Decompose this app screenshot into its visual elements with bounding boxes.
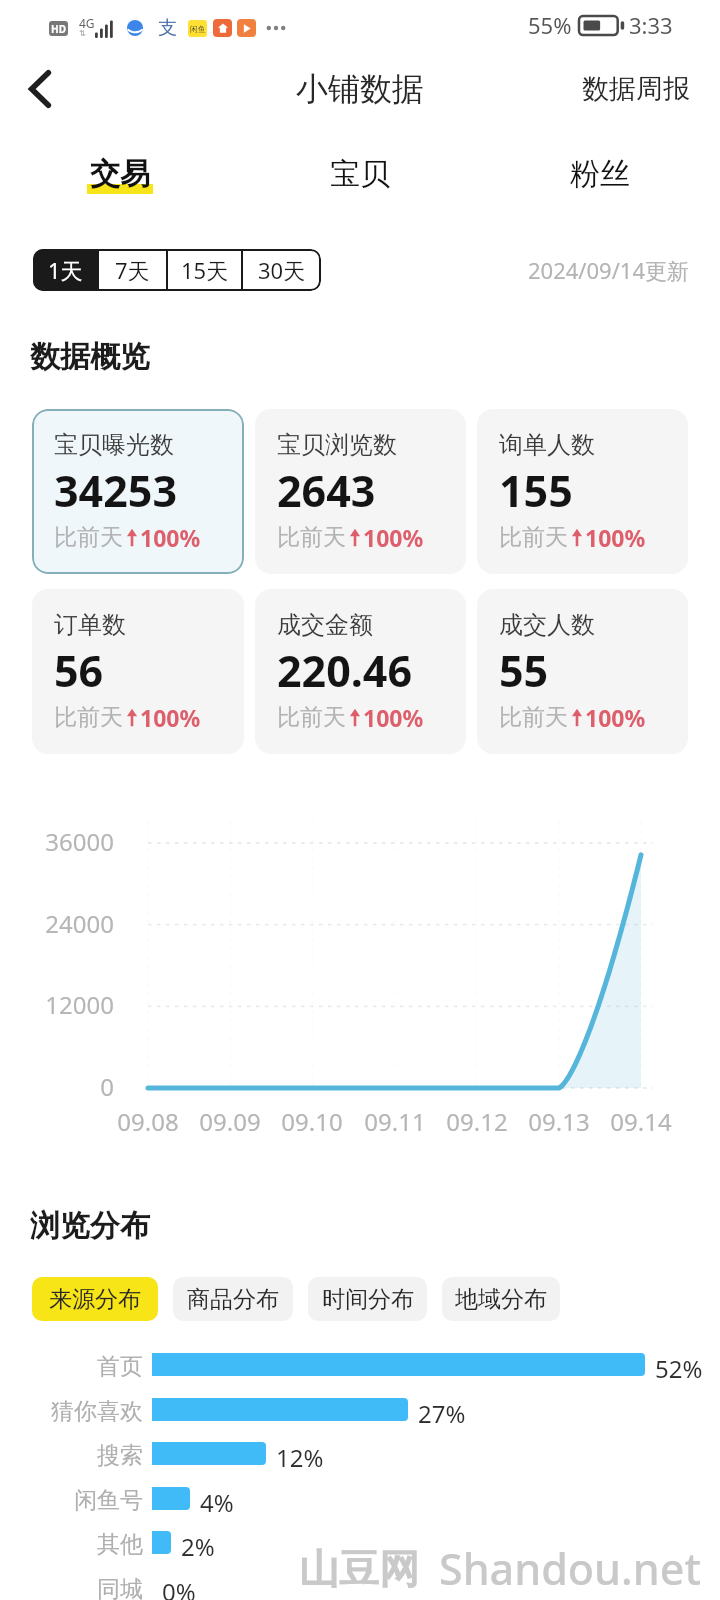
staticText: 询单人数 bbox=[499, 430, 595, 460]
staticText: 09.12 bbox=[427, 1105, 527, 1138]
staticText: 09.11 bbox=[345, 1105, 445, 1138]
button[interactable]: 1天 bbox=[33, 249, 97, 291]
staticText: 12% bbox=[276, 1441, 324, 1474]
staticText: 55 bbox=[499, 641, 549, 700]
staticText: 闲鱼 bbox=[190, 24, 206, 34]
staticText: 09.13 bbox=[509, 1105, 609, 1138]
staticText: 2% bbox=[181, 1530, 215, 1563]
button[interactable]: 订单数 bbox=[32, 589, 244, 754]
staticText: 宝贝浏览数 bbox=[277, 430, 397, 460]
button[interactable]: 其他 bbox=[0, 1522, 720, 1563]
staticText: 2643 bbox=[277, 461, 376, 520]
staticText: 2024/09/14更新 bbox=[528, 255, 690, 285]
staticText: 220.46 bbox=[277, 641, 413, 700]
button[interactable]: 搜索 bbox=[0, 1433, 720, 1474]
staticText: 成交人数 bbox=[499, 610, 595, 640]
staticText: 09.10 bbox=[262, 1105, 362, 1138]
button[interactable]: 询单人数 bbox=[477, 409, 688, 574]
staticText: 订单数 bbox=[54, 610, 126, 640]
staticText: 34253 bbox=[54, 461, 177, 520]
staticText: 52% bbox=[655, 1352, 703, 1385]
button[interactable]: 宝贝 bbox=[240, 135, 480, 213]
staticText: 支 bbox=[158, 16, 177, 40]
staticText: 55% bbox=[528, 10, 572, 40]
staticText: 155 bbox=[499, 461, 573, 520]
staticText: 100% bbox=[585, 522, 646, 553]
staticText: 同城 bbox=[0, 1575, 143, 1600]
staticText: 成交金额 bbox=[277, 610, 373, 640]
button[interactable]: 地域分布 bbox=[442, 1277, 560, 1321]
button[interactable]: 7天 bbox=[99, 249, 166, 291]
staticText: 其他 bbox=[0, 1530, 143, 1559]
staticText: Shandou.net bbox=[439, 1539, 701, 1598]
staticText: 100% bbox=[585, 702, 646, 733]
staticText: 闲鱼号 bbox=[0, 1486, 143, 1515]
staticText: 4% bbox=[200, 1486, 234, 1519]
button[interactable]: 数据周报 bbox=[576, 62, 696, 116]
staticText: 宝贝 bbox=[330, 155, 390, 193]
button[interactable]: 15天 bbox=[168, 249, 241, 291]
staticText: 100% bbox=[363, 522, 424, 553]
staticText: 搜索 bbox=[0, 1441, 143, 1470]
staticText: 36000 bbox=[0, 825, 114, 858]
staticText: 粉丝 bbox=[570, 155, 630, 193]
staticText: ⇅ bbox=[79, 29, 86, 38]
button[interactable]: 成交人数 bbox=[477, 589, 688, 754]
staticText: 7天 bbox=[115, 255, 150, 285]
staticText: 09.09 bbox=[180, 1105, 280, 1138]
staticText: 比前天 bbox=[54, 703, 123, 732]
button[interactable]: 闲鱼号 bbox=[0, 1478, 720, 1519]
staticText: 数据概览 bbox=[30, 338, 150, 376]
button[interactable]: 粉丝 bbox=[480, 135, 720, 213]
button[interactable]: 猜你喜欢 bbox=[0, 1389, 720, 1430]
staticText: 0 bbox=[0, 1070, 114, 1103]
staticText: HD bbox=[51, 22, 66, 36]
staticText: 100% bbox=[140, 702, 201, 733]
staticText: 比前天 bbox=[499, 523, 568, 552]
staticText: 浏览分布 bbox=[30, 1207, 150, 1245]
staticText: 商品分布 bbox=[187, 1285, 279, 1314]
staticText: 30天 bbox=[258, 255, 306, 285]
staticText: 比前天 bbox=[54, 523, 123, 552]
staticText: 12000 bbox=[0, 988, 114, 1021]
staticText: 3:33 bbox=[629, 10, 673, 40]
button[interactable]: 30天 bbox=[243, 249, 321, 291]
button[interactable]: Back bbox=[14, 63, 66, 115]
button[interactable]: 商品分布 bbox=[173, 1277, 293, 1321]
staticText: 0% bbox=[162, 1575, 196, 1600]
button[interactable]: 来源分布 bbox=[32, 1277, 158, 1321]
staticText: 数据周报 bbox=[582, 72, 690, 106]
button[interactable]: 成交金额 bbox=[255, 589, 466, 754]
staticText: 09.14 bbox=[591, 1105, 691, 1138]
staticText: 56 bbox=[54, 641, 104, 700]
staticText: 交易 bbox=[90, 155, 150, 193]
staticText: 猜你喜欢 bbox=[0, 1397, 143, 1426]
staticText: 09.08 bbox=[98, 1105, 198, 1138]
staticText: 比前天 bbox=[499, 703, 568, 732]
staticText: 宝贝曝光数 bbox=[54, 430, 174, 460]
staticText: 小铺数据 bbox=[296, 69, 424, 109]
staticText: 时间分布 bbox=[322, 1285, 414, 1314]
staticText: 地域分布 bbox=[455, 1285, 547, 1314]
staticText: 100% bbox=[140, 522, 201, 553]
staticText: 27% bbox=[418, 1397, 466, 1430]
button[interactable]: 同城 bbox=[0, 1567, 720, 1600]
button[interactable]: 交易 bbox=[0, 135, 240, 213]
staticText: 首页 bbox=[0, 1352, 143, 1381]
staticText: 山豆网 bbox=[299, 1544, 419, 1594]
button[interactable]: 首页 bbox=[0, 1344, 720, 1385]
button[interactable]: 宝贝浏览数 bbox=[255, 409, 466, 574]
staticText: 比前天 bbox=[277, 703, 346, 732]
staticText: 15天 bbox=[181, 255, 229, 285]
staticText: 1天 bbox=[48, 255, 83, 285]
staticText: 4G bbox=[79, 15, 95, 31]
staticText: 100% bbox=[363, 702, 424, 733]
button[interactable]: 宝贝曝光数 bbox=[32, 409, 244, 574]
button[interactable]: 时间分布 bbox=[308, 1277, 427, 1321]
staticText: 比前天 bbox=[277, 523, 346, 552]
staticText: 24000 bbox=[0, 907, 114, 940]
staticText: 来源分布 bbox=[49, 1285, 141, 1314]
